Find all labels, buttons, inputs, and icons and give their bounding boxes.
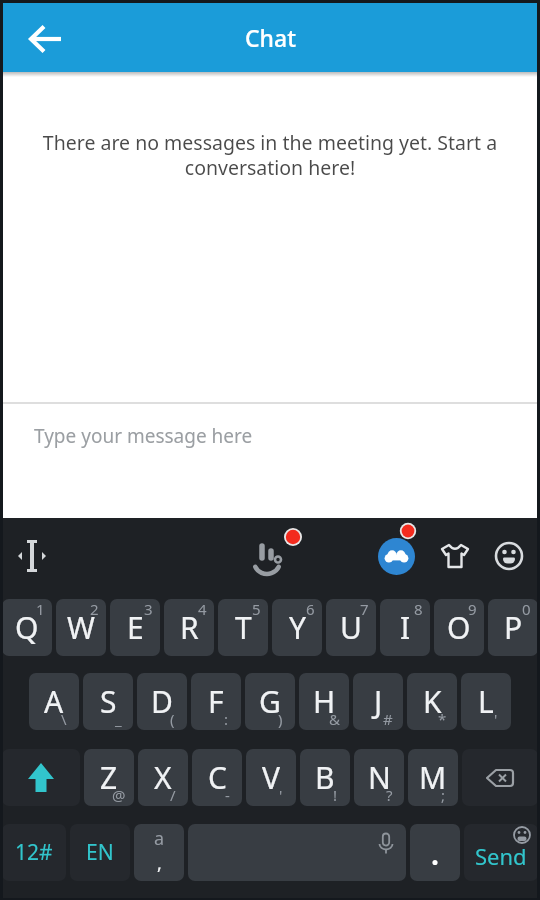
button[interactable]: J [353,673,403,730]
button[interactable] [2,749,80,806]
staticText: M [419,757,447,798]
button[interactable]: R [164,599,214,656]
button[interactable] [462,749,538,806]
button[interactable] [483,530,535,582]
staticText: V [262,757,280,798]
button[interactable]: V [246,749,296,806]
button[interactable] [188,824,406,881]
button[interactable]: Q [2,599,52,656]
button[interactable]: a [134,824,184,881]
staticText: C [208,757,227,798]
staticText: H [313,681,336,722]
staticText: 4 [198,599,207,619]
staticText: Q [15,607,39,648]
staticText: There are no messages in the meeting yet… [0,129,540,180]
staticText: 1 [36,599,45,619]
button[interactable]: E [110,599,160,656]
staticText: R [180,607,199,648]
staticText: / [170,785,176,805]
button[interactable]: EN [70,824,130,881]
staticText: 6 [306,599,315,619]
button[interactable]: Y [272,599,322,656]
button[interactable]: Send [464,824,538,881]
button[interactable]: W [56,599,106,656]
button[interactable] [429,530,481,582]
button[interactable] [3,530,55,582]
button[interactable]: N [354,749,404,806]
staticText: S [100,681,117,722]
button[interactable]: 12# [2,824,66,881]
button[interactable]: Type your message here [0,403,540,517]
staticText: a [154,826,165,851]
staticText: # [383,709,393,729]
button[interactable]: S [83,673,133,730]
button[interactable]: K [407,673,457,730]
staticText: O [447,607,471,648]
button[interactable]: L [461,673,511,730]
button[interactable] [410,824,460,881]
staticText: 3 [144,599,153,619]
staticText: ) [278,709,283,729]
staticText: Type your message here [34,423,253,449]
staticText: F [208,681,224,722]
button[interactable]: I [380,599,430,656]
staticText: P [504,607,523,648]
staticText: U [340,607,362,648]
button[interactable]: B [300,749,350,806]
staticText: X [154,757,172,798]
button[interactable]: P [488,599,538,656]
button[interactable]: A [29,673,79,730]
staticText: , [157,851,162,876]
staticText: T [235,607,252,648]
staticText: Chat [245,22,296,53]
staticText: 5 [252,599,261,619]
staticText: 2 [90,599,99,619]
staticText: * [438,709,447,729]
staticText: 8 [414,599,423,619]
staticText: - [225,785,230,805]
staticText: E [127,607,144,648]
button[interactable] [14,7,78,71]
staticText: N [368,757,391,798]
staticText: 9 [468,599,477,619]
staticText: A [44,681,64,722]
button[interactable]: D [137,673,187,730]
staticText: ' [279,785,283,805]
staticText: W [67,607,95,648]
staticText: ? [386,785,393,805]
button[interactable]: X [138,749,188,806]
staticText: & [329,709,340,729]
button[interactable]: H [299,673,349,730]
staticText: 12# [15,838,53,867]
staticText: ; [441,785,446,805]
staticText: D [151,681,173,722]
button[interactable]: T [218,599,268,656]
button[interactable]: G [245,673,295,730]
button[interactable]: Z [84,749,134,806]
staticText: G [259,681,281,722]
staticText: _ [115,709,122,729]
staticText: ( [170,709,175,729]
button[interactable]: F [191,673,241,730]
staticText: ! [333,785,338,805]
button[interactable] [378,538,415,575]
staticText: J [374,681,383,722]
staticText: Send [475,841,527,871]
staticText: 0 [522,599,531,619]
staticText: EN [86,838,114,867]
button[interactable]: O [434,599,484,656]
staticText: \ [61,709,67,729]
button[interactable]: C [192,749,242,806]
staticText: ' [494,709,498,729]
staticText: B [315,757,335,798]
staticText: K [423,681,442,722]
staticText: : [224,709,229,729]
button[interactable]: U [326,599,376,656]
staticText: L [478,681,494,722]
staticText: @ [112,785,126,805]
staticText: I [400,607,411,648]
staticText: 7 [360,599,369,619]
button[interactable] [239,529,299,589]
staticText: Z [100,757,118,798]
button[interactable]: M [408,749,458,806]
